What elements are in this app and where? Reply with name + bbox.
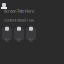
staticText: lbl bbox=[29, 39, 33, 42]
staticText: Screen Title Here bbox=[4, 8, 34, 14]
button[interactable]: lbl bbox=[2, 28, 12, 40]
button[interactable]: lbl bbox=[14, 28, 24, 40]
button[interactable]: App bbox=[2, 3, 6, 7]
staticText: lbl bbox=[17, 39, 21, 42]
button[interactable]: lbl bbox=[26, 28, 36, 40]
staticText: content detail row bbox=[4, 17, 34, 23]
staticText: lbl bbox=[5, 39, 9, 42]
